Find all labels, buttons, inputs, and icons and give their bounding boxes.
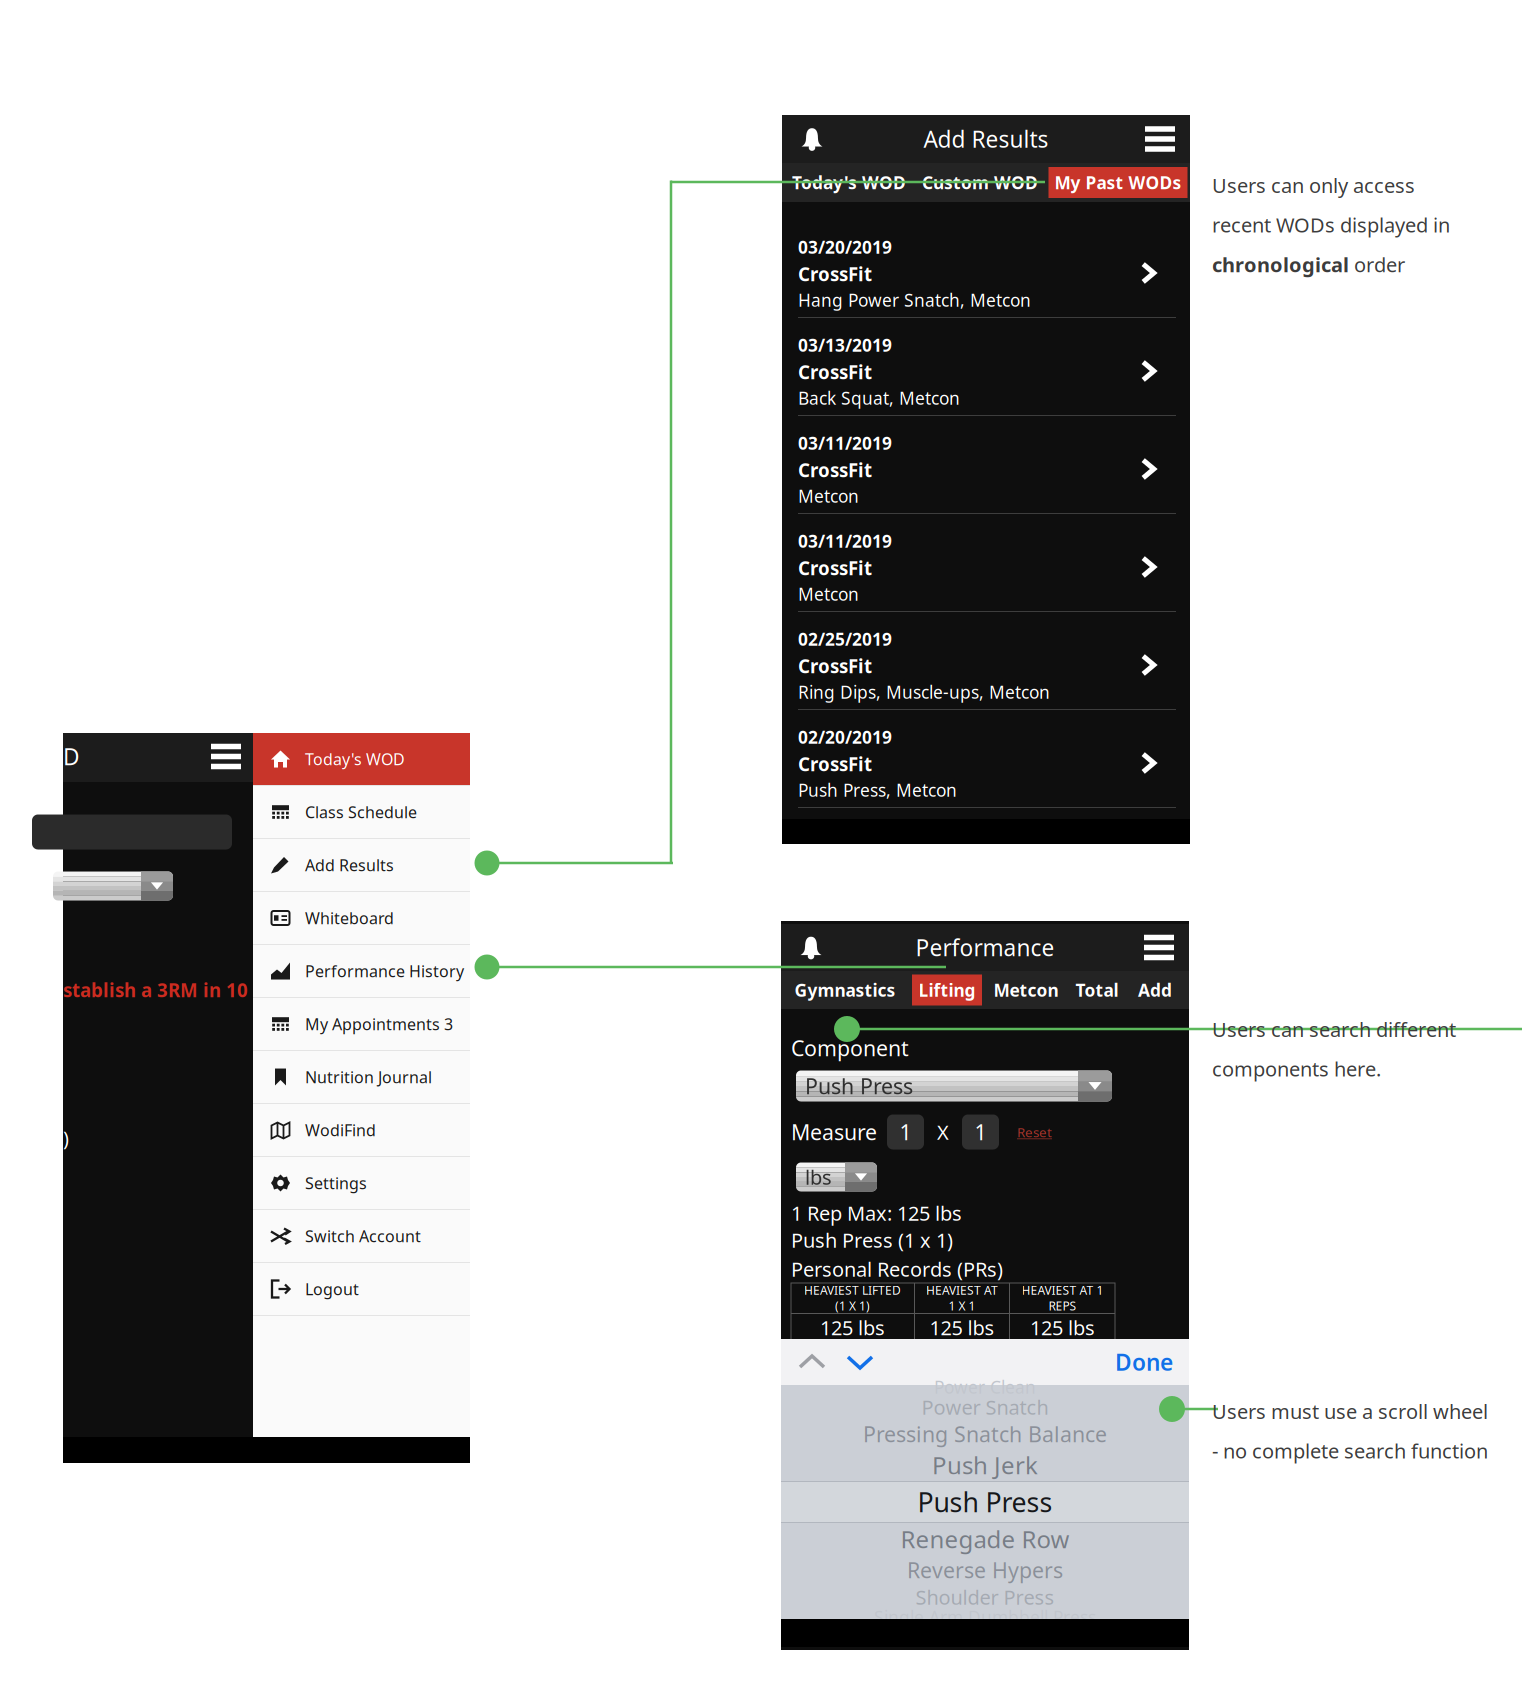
button[interactable]: Lifting <box>912 974 982 1005</box>
button[interactable]: WodiFind <box>253 1104 470 1157</box>
staticText: Back Squat, Metcon <box>798 386 960 409</box>
button[interactable]: Reset <box>1017 1123 1052 1141</box>
staticText: Pressing Snatch Balance <box>863 1420 1107 1448</box>
button[interactable]: lbs <box>796 1162 877 1191</box>
button[interactable]: Today's WOD <box>253 733 470 786</box>
button[interactable]: Settings <box>253 1157 470 1210</box>
button[interactable]: 03/11/2019 <box>782 514 1190 612</box>
staticText: 03/13/2019 <box>798 333 892 356</box>
staticText: 03/11/2019 <box>798 529 892 552</box>
staticText: Total <box>1075 978 1118 1001</box>
staticText: Component <box>791 1034 909 1062</box>
button[interactable]: Logout <box>253 1263 470 1316</box>
button[interactable]: Previous field <box>797 1350 827 1374</box>
staticText: Switch Account <box>305 1225 421 1247</box>
button[interactable]: Class Schedule <box>253 786 470 839</box>
staticText: CrossFit <box>798 458 872 482</box>
button[interactable]: Metcon <box>987 971 1065 1009</box>
button[interactable]: Menu <box>199 733 253 780</box>
staticText: chronological <box>1212 251 1349 278</box>
staticText: Personal Records (PRs) <box>791 1256 1003 1282</box>
button[interactable]: Nutrition Journal <box>253 1051 470 1104</box>
staticText: components here. <box>1212 1056 1381 1082</box>
staticText: X <box>937 1119 949 1145</box>
staticText: Lifting <box>918 978 975 1001</box>
staticText: Add Results <box>923 124 1048 154</box>
staticText: Push Press <box>805 1072 913 1100</box>
staticText: Today's WOD <box>305 748 405 770</box>
button[interactable]: 02/20/2019 <box>782 710 1190 808</box>
staticText: Metcon <box>993 978 1058 1001</box>
staticText: Renegade Row <box>900 1523 1069 1555</box>
staticText: Push Press, Metcon <box>798 778 957 801</box>
staticText: Settings <box>305 1172 367 1194</box>
staticText: D <box>63 741 80 771</box>
staticText: 125 lbs <box>929 1314 994 1341</box>
staticText: Class Schedule <box>305 801 417 823</box>
staticText: Power Snatch <box>921 1394 1048 1420</box>
button[interactable]: Total <box>1065 971 1129 1009</box>
button[interactable]: Gymnastics <box>790 971 900 1009</box>
staticText: Ring Dips, Muscle-ups, Metcon <box>798 680 1050 703</box>
button[interactable]: Notifications <box>781 924 841 971</box>
staticText: CrossFit <box>798 752 872 776</box>
staticText: Add <box>1138 978 1172 1001</box>
staticText: Done <box>1115 1347 1173 1377</box>
staticText: Reverse Hypers <box>907 1556 1063 1584</box>
staticText: CrossFit <box>798 360 872 384</box>
staticText: Hang Power Snatch, Metcon <box>798 288 1031 311</box>
staticText: Gymnastics <box>794 978 895 1001</box>
staticText: Metcon <box>798 484 859 507</box>
button[interactable]: Menu <box>1129 924 1189 971</box>
button[interactable]: Menu <box>1130 115 1190 163</box>
staticText: Reset <box>1017 1123 1052 1141</box>
staticText: Nutrition Journal <box>305 1066 432 1088</box>
staticText: lbs <box>805 1164 832 1190</box>
staticText: Users must use a scroll wheel <box>1212 1398 1488 1425</box>
staticText: 03/20/2019 <box>798 235 892 258</box>
staticText: Logout <box>305 1278 359 1300</box>
staticText: - no complete search function <box>1212 1438 1488 1464</box>
button[interactable]: 03/11/2019 <box>782 416 1190 514</box>
staticText: Metcon <box>798 582 859 605</box>
button[interactable]: 02/25/2019 <box>782 612 1190 710</box>
staticText: 125 lbs <box>820 1314 885 1341</box>
staticText: Power Clean <box>934 1375 1036 1398</box>
staticText: Performance <box>915 932 1054 962</box>
button[interactable]: Notifications <box>782 115 842 163</box>
button[interactable]: 03/13/2019 <box>782 318 1190 416</box>
button[interactable]: Performance History <box>253 945 470 998</box>
staticText: 02/25/2019 <box>798 627 892 650</box>
button[interactable]: My Appointments 3 <box>253 998 470 1051</box>
staticText: Today's WOD <box>792 171 906 194</box>
button[interactable]: Whiteboard <box>253 892 470 945</box>
staticText: 1 Rep Max: 125 lbs <box>791 1200 962 1226</box>
staticText: Performance History <box>305 960 464 982</box>
staticText: CrossFit <box>798 654 872 678</box>
button[interactable]: Custom WOD <box>914 163 1046 202</box>
staticText: Whiteboard <box>305 907 394 929</box>
staticText: Push Press (1 x 1) <box>791 1227 953 1253</box>
staticText: REPS <box>1048 1298 1076 1314</box>
button[interactable]: Next field <box>845 1350 875 1374</box>
button[interactable]: Add <box>1125 971 1185 1009</box>
button[interactable]: Push Press <box>796 1070 1112 1101</box>
button[interactable]: Add Results <box>253 839 470 892</box>
staticText: Add Results <box>305 854 394 876</box>
button[interactable]: My Past WODs <box>1048 167 1187 198</box>
button[interactable]: Done <box>1115 1347 1173 1377</box>
staticText: 03/11/2019 <box>798 431 892 454</box>
staticText: My Appointments 3 <box>305 1013 453 1035</box>
staticText: order <box>1349 251 1405 278</box>
staticText: recent WODs displayed in <box>1212 212 1450 238</box>
staticText: 1 <box>974 1118 986 1146</box>
button[interactable]: 03/20/2019 <box>782 220 1190 318</box>
staticText: WodiFind <box>305 1119 376 1141</box>
button[interactable]: Select <box>53 871 173 900</box>
staticText: HEAVIEST AT 1 <box>1021 1282 1103 1298</box>
staticText: Push Press <box>917 1484 1052 1520</box>
staticText: stablish a 3RM in 10 <box>63 978 248 1002</box>
button[interactable]: Today's WOD <box>783 163 915 202</box>
staticText: Single Arm Dumbbell Press <box>874 1605 1096 1628</box>
button[interactable]: Switch Account <box>253 1210 470 1263</box>
